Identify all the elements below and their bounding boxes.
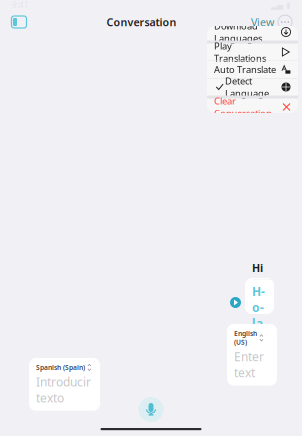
staticText: Detect Language: [225, 75, 269, 99]
staticText: Introducir texto: [36, 374, 91, 406]
button[interactable]: Clear Conversation: [207, 98, 298, 115]
button[interactable]: Detect Language: [207, 78, 298, 95]
button[interactable]: Toggle Sidebar: [6, 10, 32, 34]
staticText: Auto Translate: [214, 63, 276, 76]
staticText: Enter text: [234, 349, 264, 381]
staticText: Hi: [252, 261, 263, 275]
staticText: English (US): [234, 329, 257, 347]
staticText: Hola: [252, 283, 265, 331]
button[interactable]: More: [274, 10, 296, 34]
staticText: Clear Conversation: [214, 95, 272, 119]
staticText: View: [251, 15, 274, 29]
staticText: Play Translations: [214, 40, 266, 64]
button[interactable]: Record: [138, 397, 163, 422]
button[interactable]: Play Translations: [207, 43, 298, 60]
button[interactable]: View: [251, 10, 274, 34]
staticText: ▂▄ ▮: [271, 0, 290, 10]
staticText: Download Languages: [214, 20, 262, 44]
staticText: Conversation: [106, 15, 176, 29]
staticText: 9:41: [12, 0, 29, 10]
staticText: Spanish (Spain): [36, 363, 85, 372]
button[interactable]: Auto Translate: [207, 61, 298, 78]
button[interactable]: Download Languages: [207, 23, 298, 40]
